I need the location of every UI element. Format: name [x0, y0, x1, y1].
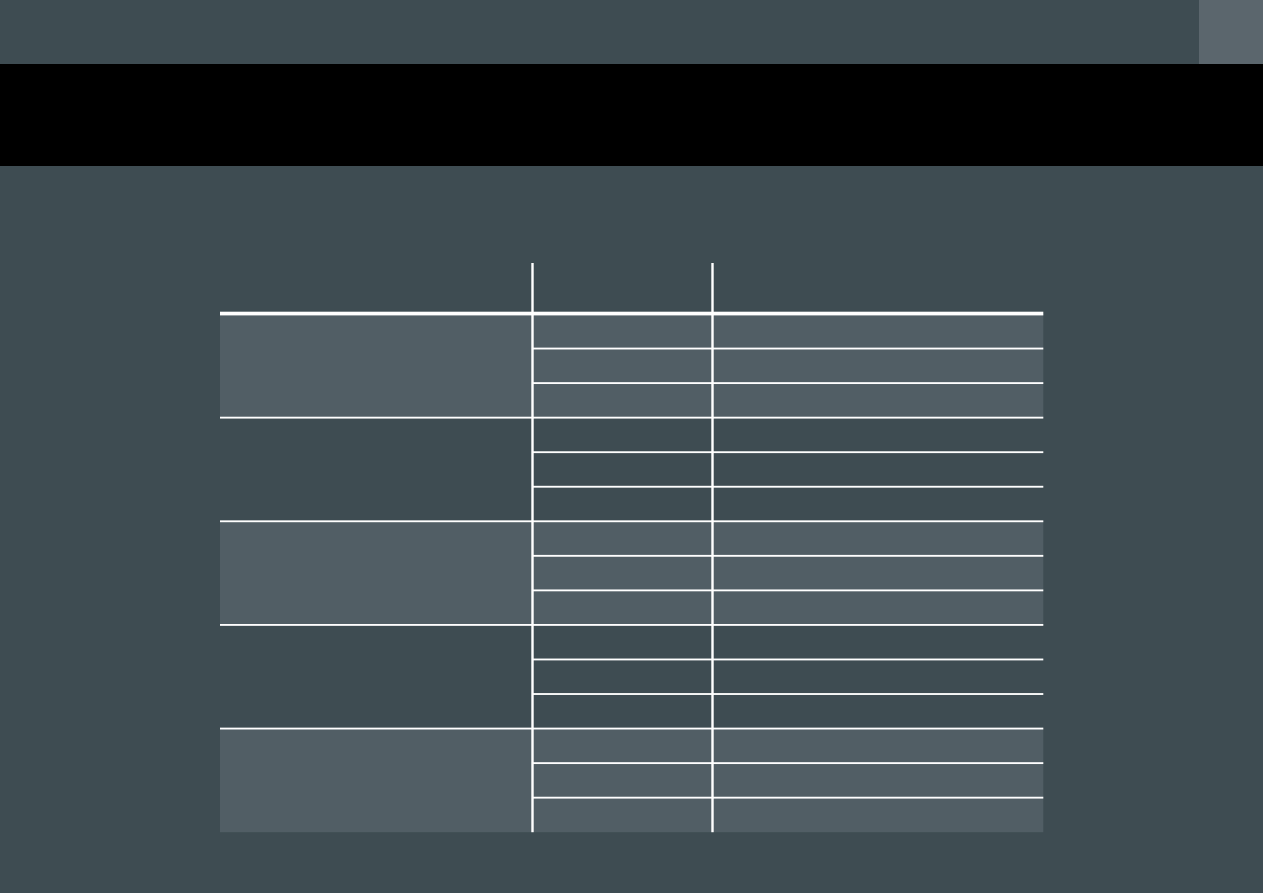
button[interactable]: Row 4 [220, 418, 1043, 453]
button[interactable]: Row 7 [220, 521, 1043, 556]
button[interactable]: Row 12 [220, 694, 1043, 729]
button[interactable]: Row 10 [220, 625, 1043, 660]
button[interactable]: Row 11 [220, 659, 1043, 694]
button[interactable]: Row 14 [220, 763, 1043, 798]
button[interactable]: Row 8 [220, 556, 1043, 591]
button[interactable]: Row 6 [220, 487, 1043, 522]
button[interactable]: Row 5 [220, 452, 1043, 487]
button[interactable]: Row 15 [220, 798, 1043, 833]
button[interactable]: Row 2 [220, 349, 1043, 384]
button[interactable]: Row 1 [220, 314, 1043, 349]
button[interactable]: Row 3 [220, 383, 1043, 418]
button[interactable]: Row 9 [220, 590, 1043, 625]
button[interactable]: Row 13 [220, 729, 1043, 764]
